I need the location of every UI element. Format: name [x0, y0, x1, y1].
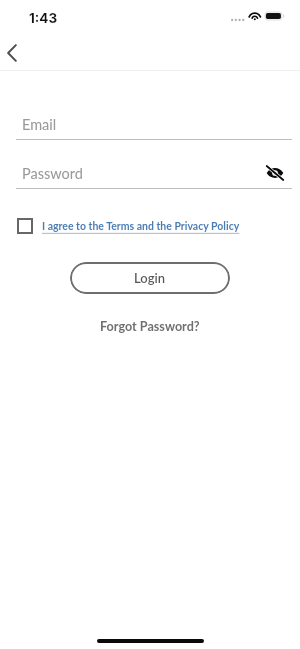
staticText: 1:43 [29, 10, 58, 26]
staticText: Login [134, 270, 166, 286]
staticText: Forgot Password? [100, 319, 200, 334]
staticText: Email [22, 116, 57, 133]
button[interactable]: Forgot Password? [94, 316, 206, 337]
button[interactable]: Show password [258, 159, 291, 186]
staticText: Password [22, 165, 83, 182]
button[interactable]: Login [70, 262, 230, 294]
button[interactable]: Back [0, 36, 29, 70]
button[interactable]: I agree to the Terms and the Privacy Pol… [17, 217, 240, 235]
staticText: I agree to the Terms and the Privacy Pol… [42, 220, 240, 233]
